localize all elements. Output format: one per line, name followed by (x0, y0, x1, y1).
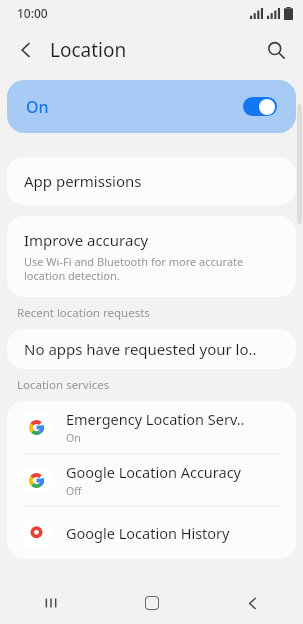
staticText: Location (50, 37, 127, 63)
staticText: Google Location History (66, 523, 230, 543)
staticText: Emergency Location Serv.. (66, 409, 245, 429)
button[interactable]: Home (101, 582, 202, 624)
button[interactable]: Emergency Location Serv.. (7, 401, 296, 453)
staticText: App permissions (24, 171, 142, 191)
button[interactable]: No apps have requested your lo.. (7, 329, 296, 369)
button[interactable]: Recent apps (0, 582, 101, 624)
button[interactable]: Improve accuracy (7, 216, 296, 297)
staticText: Recent location requests (17, 305, 150, 321)
button[interactable]: Search (257, 31, 295, 69)
button[interactable]: Google Location History (7, 507, 296, 559)
staticText: Location services (17, 377, 110, 393)
staticText: No apps have requested your lo.. (24, 339, 257, 359)
staticText: 10:00 (17, 5, 48, 21)
staticText: Google Location Accuracy (66, 462, 241, 482)
staticText: Off (66, 484, 82, 498)
staticText: Use Wi-Fi and Bluetooth for more accurat… (24, 254, 279, 283)
staticText: Improve accuracy (24, 230, 149, 250)
button[interactable]: Back (8, 32, 44, 68)
button[interactable]: Google Location Accuracy (7, 454, 296, 506)
button[interactable]: App permissions (7, 157, 296, 205)
button[interactable]: Back (202, 582, 303, 624)
staticText: On (26, 96, 49, 118)
staticText: On (66, 431, 81, 445)
button[interactable]: On (7, 80, 296, 133)
